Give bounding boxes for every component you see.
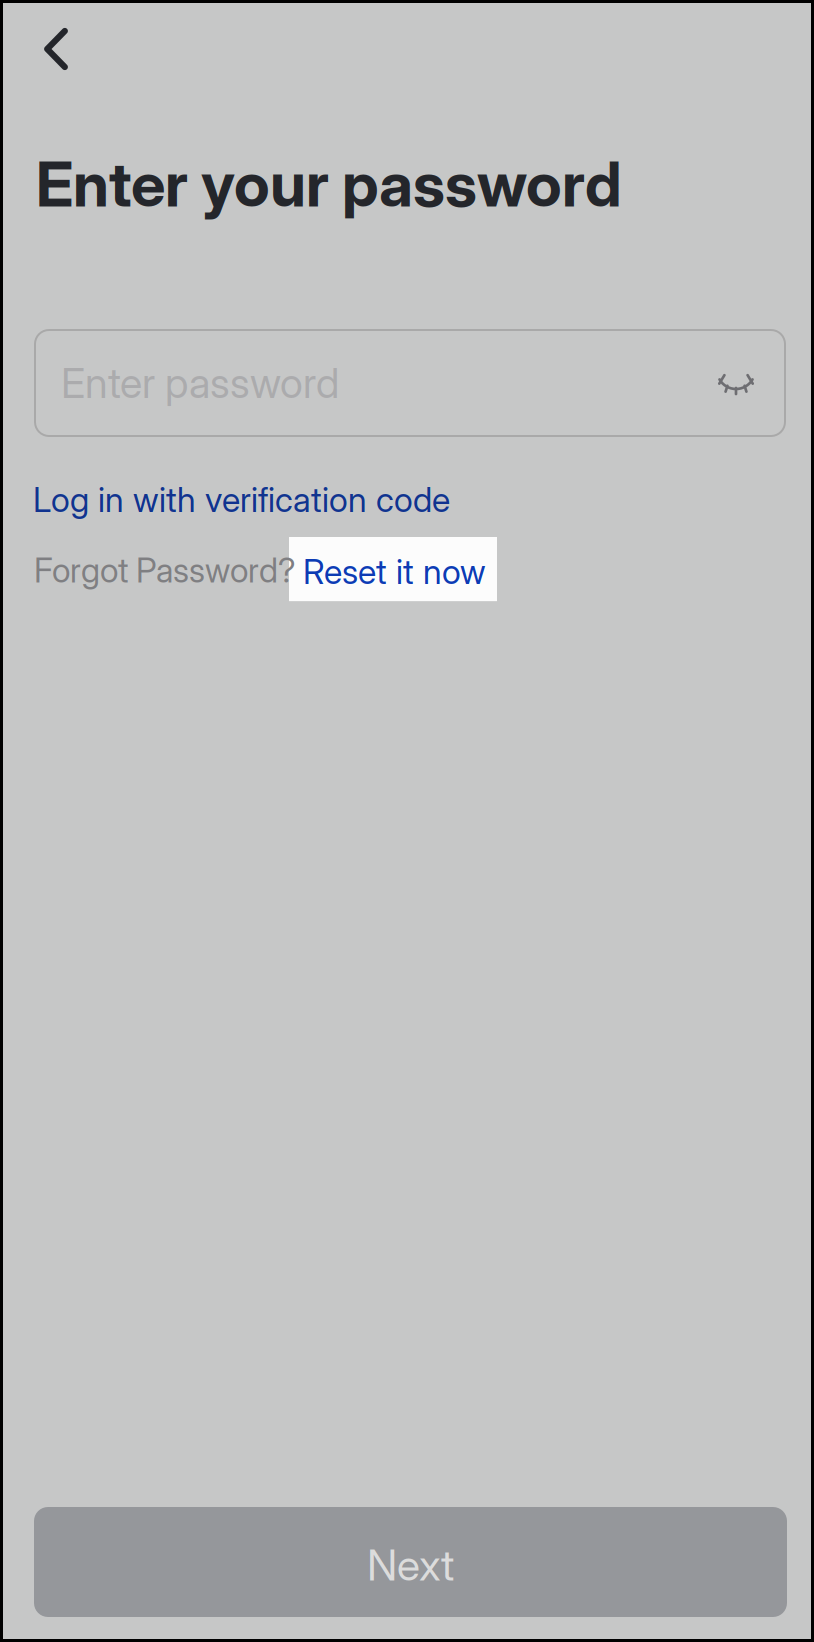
button[interactable]: Reset it now xyxy=(289,537,497,601)
staticText: Log in with verification code xyxy=(33,479,450,520)
button[interactable]: Log in with verification code xyxy=(3,467,479,532)
staticText: Reset it now xyxy=(303,551,486,592)
button[interactable]: Next xyxy=(34,1507,787,1617)
staticText: Enter your password xyxy=(36,147,622,221)
staticText: Enter password xyxy=(61,358,339,408)
staticText: Forgot Password? xyxy=(34,550,296,591)
staticText: Next xyxy=(367,1539,454,1591)
button[interactable]: Back xyxy=(3,3,92,92)
button[interactable]: Show password xyxy=(706,360,766,406)
